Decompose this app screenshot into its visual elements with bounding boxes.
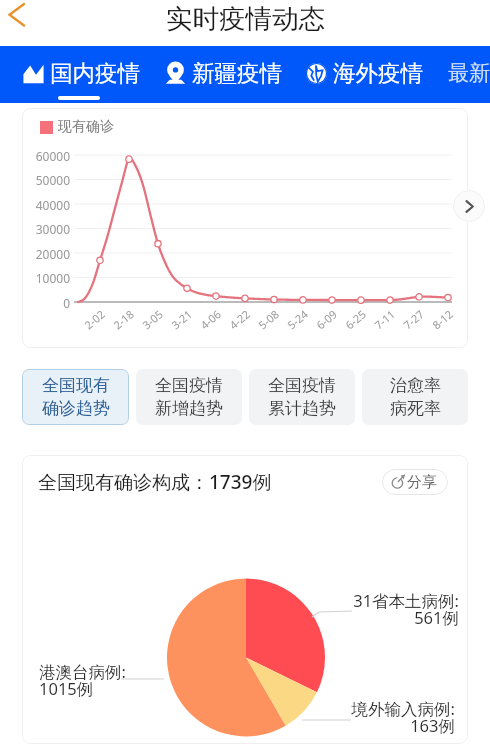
- staticText: 7-27: [400, 306, 427, 332]
- button[interactable]: Back: [0, 0, 40, 34]
- staticText: 累计趋势: [268, 398, 336, 419]
- staticText: 8-12: [429, 306, 456, 332]
- staticText: 全国现有: [42, 375, 110, 396]
- staticText: 60000: [35, 148, 70, 164]
- staticText: 10000: [35, 270, 70, 286]
- staticText: 2-18: [110, 306, 137, 332]
- staticText: 50000: [35, 172, 70, 188]
- staticText: 4-22: [226, 306, 253, 332]
- staticText: 海外疫情: [333, 59, 423, 87]
- button[interactable]: 全国疫情: [249, 369, 355, 425]
- staticText: 全国现有确诊构成：1739例: [38, 469, 272, 495]
- staticText: 国内疫情: [50, 59, 140, 87]
- staticText: 治愈率: [390, 375, 441, 396]
- staticText: 5-24: [284, 306, 311, 332]
- button[interactable]: Next chart: [453, 190, 485, 222]
- staticText: 全国疫情: [268, 375, 336, 396]
- staticText: 现有确诊: [58, 118, 114, 136]
- staticText: 3-21: [168, 306, 195, 332]
- button[interactable]: 分享: [382, 469, 448, 495]
- button[interactable]: 最新: [448, 60, 490, 86]
- staticText: 40000: [35, 197, 70, 213]
- staticText: 31省本土病例: 561例: [353, 589, 459, 629]
- staticText: 实时疫情动态: [166, 2, 325, 35]
- staticText: 新疆疫情: [192, 59, 282, 87]
- staticText: 0: [63, 295, 70, 311]
- staticText: 2-02: [81, 306, 108, 332]
- staticText: 5-08: [255, 306, 282, 332]
- button[interactable]: 国内疫情: [23, 59, 140, 87]
- staticText: 20000: [35, 246, 70, 262]
- staticText: 港澳台病例: 1015例: [39, 660, 126, 700]
- staticText: 全国疫情: [155, 375, 223, 396]
- staticText: 6-25: [342, 306, 369, 332]
- staticText: 新增趋势: [155, 398, 223, 419]
- button[interactable]: 全国现有: [22, 369, 129, 425]
- staticText: 病死率: [390, 398, 441, 419]
- button[interactable]: 新疆疫情: [165, 59, 282, 87]
- button[interactable]: 全国疫情: [136, 369, 242, 425]
- button[interactable]: 海外疫情: [306, 59, 423, 87]
- staticText: 确诊趋势: [42, 398, 110, 419]
- button[interactable]: 治愈率: [362, 369, 468, 425]
- staticText: 4-06: [197, 306, 224, 332]
- staticText: 分享: [407, 473, 437, 492]
- staticText: 3-05: [139, 306, 166, 332]
- staticText: 境外输入病例: 163例: [351, 697, 455, 737]
- staticText: 7-11: [371, 306, 398, 332]
- staticText: 30000: [35, 221, 70, 237]
- staticText: 6-09: [313, 306, 340, 332]
